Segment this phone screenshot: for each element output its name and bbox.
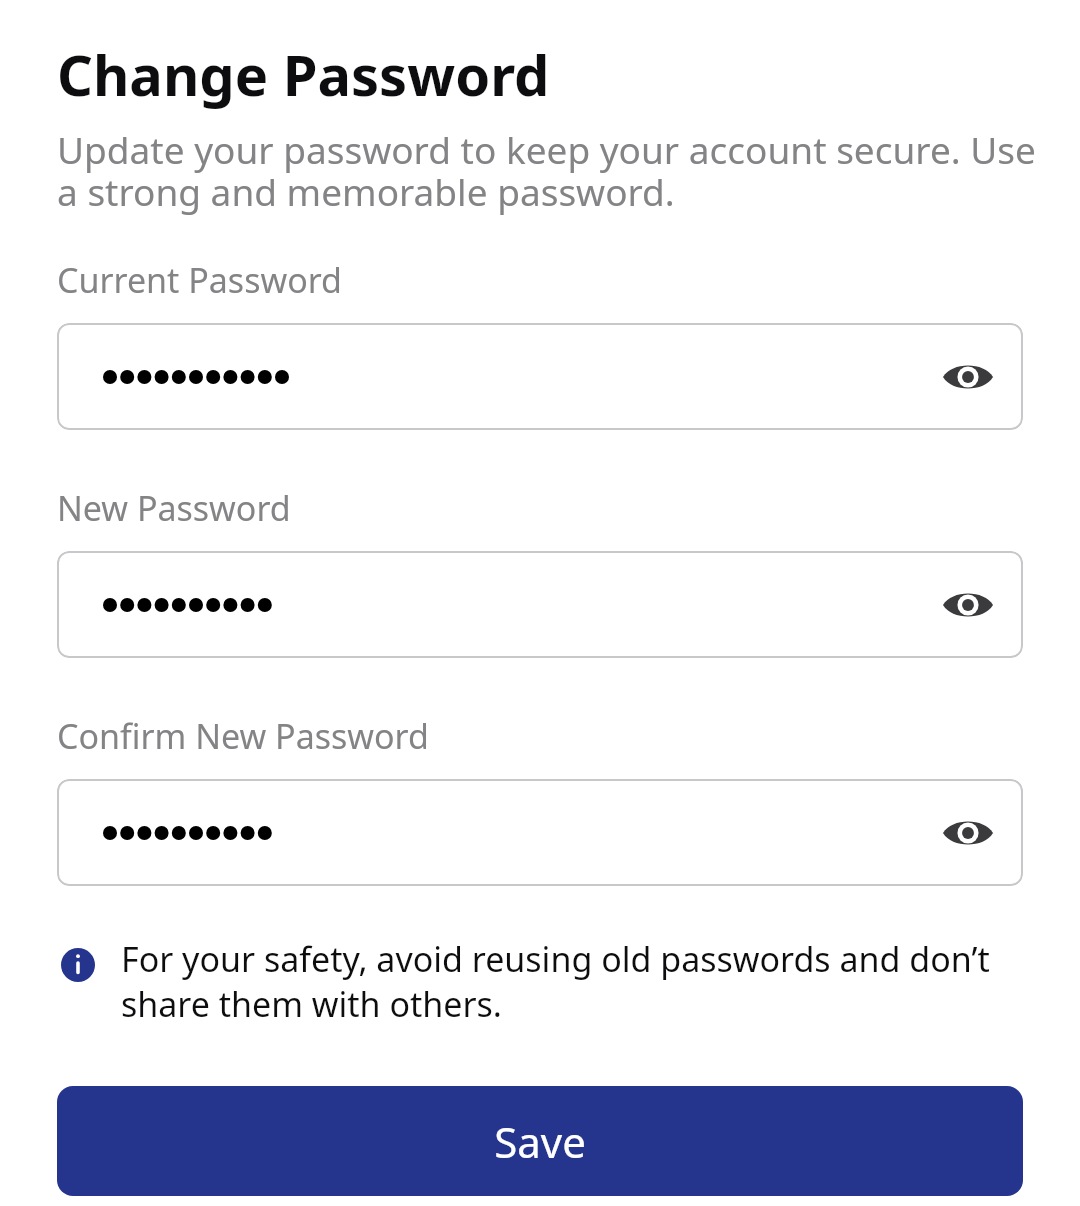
staticText: For your safety, avoid reusing old passw… [121,936,1023,1026]
staticText: Update your password to keep your accoun… [57,124,1040,217]
button[interactable]: Show password [937,346,999,408]
staticText: New Password [57,485,291,531]
button[interactable]: Show password [57,779,1023,886]
staticText: Current Password [57,257,342,303]
button[interactable]: Save [57,1086,1023,1196]
button[interactable]: Show password [937,574,999,636]
button[interactable]: Show password [57,323,1023,430]
staticText: Change Password [57,36,550,112]
button[interactable]: Show password [937,802,999,864]
staticText: Confirm New Password [57,713,429,759]
button[interactable]: Show password [57,551,1023,658]
staticText: Save [494,1113,586,1170]
